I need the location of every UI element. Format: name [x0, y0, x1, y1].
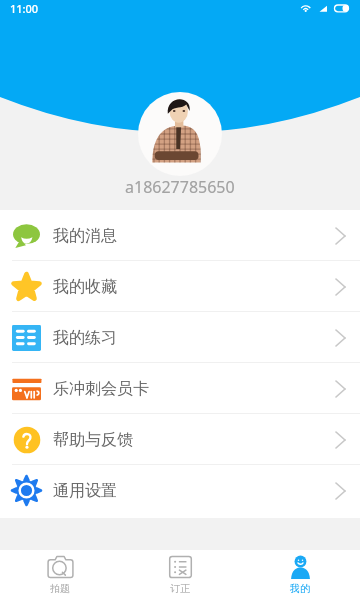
button[interactable]: 我的练习 [0, 312, 360, 363]
button[interactable]: 通用设置 [0, 465, 360, 516]
button[interactable]: 我的收藏 [0, 261, 360, 312]
button[interactable]: 订正 [120, 550, 240, 595]
button[interactable]: 乐冲刺会员卡 [0, 363, 360, 414]
staticText: 拍题 [50, 582, 70, 595]
button[interactable]: 拍题 [0, 550, 120, 595]
staticText: 11:00 [10, 1, 39, 16]
staticText: a18627785650 [125, 176, 235, 198]
staticText: 我的收藏 [53, 277, 117, 297]
staticText: 订正 [170, 582, 190, 595]
button[interactable]: 帮助与反馈 [0, 414, 360, 465]
button[interactable]: 我的 [240, 550, 360, 595]
staticText: 乐冲刺会员卡 [53, 379, 149, 399]
staticText: 我的 [290, 582, 310, 595]
staticText: 我的消息 [53, 226, 117, 246]
staticText: 通用设置 [53, 481, 117, 501]
staticText: 帮助与反馈 [53, 430, 133, 450]
staticText: 我的练习 [53, 328, 117, 348]
button[interactable]: 我的消息 [0, 210, 360, 261]
